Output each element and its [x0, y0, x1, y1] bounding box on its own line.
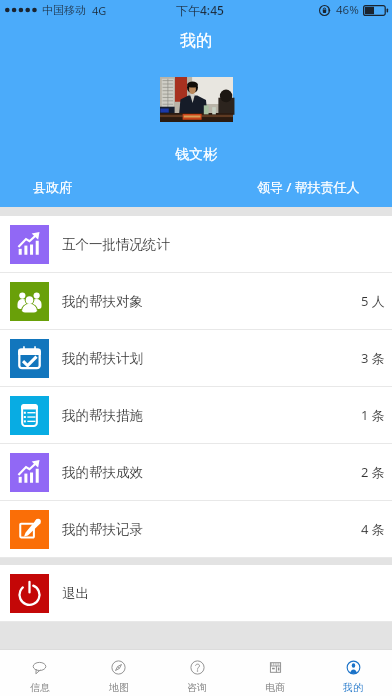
staticText: 我的帮扶措施 [62, 407, 143, 424]
staticText: 钱文彬 [175, 146, 217, 164]
staticText: 我的 [180, 31, 212, 51]
staticText: 五个一批情况统计 [62, 236, 170, 253]
staticText: 我的 [343, 681, 363, 694]
button[interactable]: 我的帮扶对象 [0, 273, 392, 330]
staticText: 退出 [62, 585, 89, 602]
staticText: 地图 [109, 681, 129, 694]
staticText: 我的帮扶对象 [62, 293, 143, 310]
staticText: 我的帮扶计划 [62, 350, 143, 367]
staticText: 4 条 [361, 520, 385, 538]
button[interactable]: 地图 [79, 650, 158, 696]
button[interactable]: 电商 [236, 650, 314, 696]
staticText: 2 条 [361, 463, 385, 481]
button[interactable]: 信息 [0, 650, 79, 696]
staticText: 领导 / 帮扶责任人 [257, 178, 360, 196]
staticText: 4G [92, 3, 107, 18]
button[interactable]: 我的 [314, 650, 392, 696]
staticText: 3 条 [361, 349, 385, 367]
button[interactable]: 我的帮扶计划 [0, 330, 392, 387]
staticText: 电商 [265, 681, 285, 694]
button[interactable]: 我的帮扶记录 [0, 501, 392, 558]
staticText: 我的帮扶成效 [62, 464, 143, 481]
staticText: 我的帮扶记录 [62, 521, 143, 538]
staticText: 咨询 [187, 681, 207, 694]
button[interactable]: 我的帮扶措施 [0, 387, 392, 444]
staticText: 县政府 [33, 179, 72, 195]
staticText: 下午4:45 [176, 2, 224, 18]
button[interactable]: 五个一批情况统计 [0, 216, 392, 273]
staticText: 中国移动 [42, 3, 86, 17]
button[interactable]: 我的帮扶成效 [0, 444, 392, 501]
button[interactable]: 退出 [0, 565, 392, 622]
staticText: 信息 [30, 681, 50, 694]
button[interactable]: 咨询 [158, 650, 236, 696]
staticText: 1 条 [361, 406, 385, 424]
staticText: 5 人 [361, 292, 385, 310]
staticText: 46% [336, 2, 359, 18]
